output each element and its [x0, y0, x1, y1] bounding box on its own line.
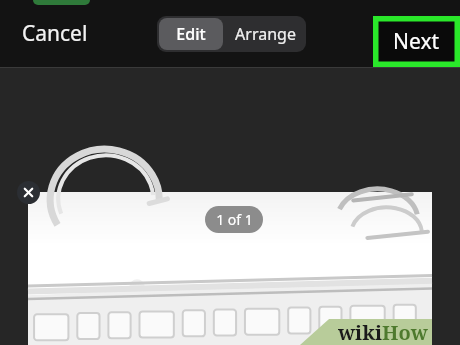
staticText: 1 of 1 [216, 210, 253, 229]
button[interactable]: Cancel [10, 11, 100, 56]
staticText: Edit [176, 23, 206, 45]
button[interactable]: Arrange [225, 16, 306, 52]
button[interactable]: Remove photo [17, 181, 40, 204]
staticText: Next [393, 27, 440, 56]
button[interactable]: Edit [159, 18, 223, 50]
staticText: How [382, 319, 428, 345]
staticText: Cancel [22, 19, 88, 48]
staticText: wiki [338, 319, 382, 345]
button[interactable]: 1 of 1 [205, 206, 263, 233]
button[interactable]: Next [373, 16, 460, 67]
staticText: Arrange [235, 23, 296, 45]
